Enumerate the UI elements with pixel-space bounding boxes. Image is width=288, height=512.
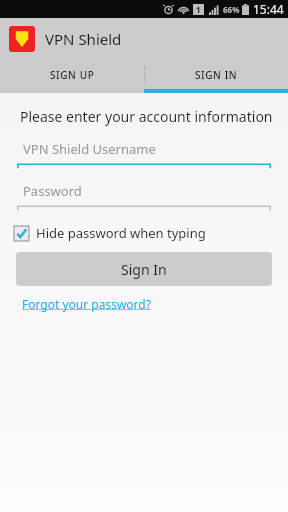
button[interactable]: SIGN UP [0,60,144,89]
staticText: SIGN IN [195,68,238,82]
staticText: Please enter your account information [20,107,273,126]
button[interactable]: Hide password when typing [14,224,206,242]
staticText: SIGN UP [50,68,95,82]
staticText: Password [23,182,82,200]
staticText: 1 [196,4,201,15]
staticText: 66% [223,4,240,15]
staticText: VPN Shield [45,29,122,49]
staticText: Forgot your password? [22,296,151,312]
staticText: VPN Shield Username [23,140,156,158]
staticText: Hide password when typing [36,224,206,242]
button[interactable]: Sign In [16,252,272,286]
staticText: Sign In [121,260,167,279]
button[interactable]: Forgot your password? [22,296,151,312]
staticText: 15:44 [253,1,284,17]
button[interactable]: SIGN IN [144,60,288,89]
